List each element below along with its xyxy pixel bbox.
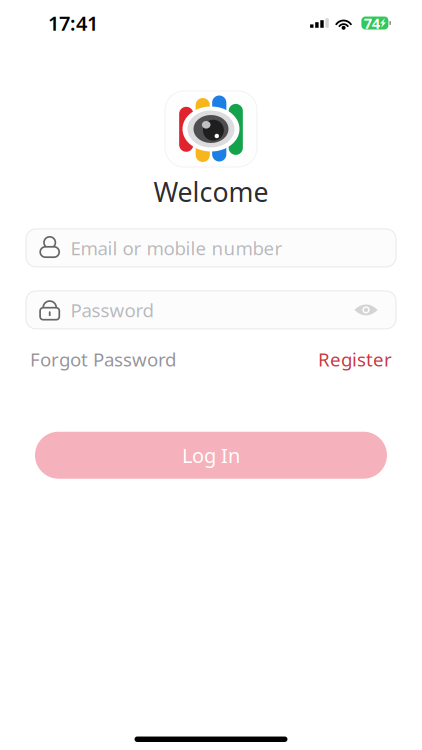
- button[interactable]: Show password: [354, 304, 378, 315]
- button[interactable]: Register: [318, 347, 392, 372]
- button[interactable]: Email or mobile number: [26, 229, 396, 267]
- staticText: Password: [70, 297, 153, 322]
- button[interactable]: Password: [26, 291, 396, 329]
- staticText: Log In: [182, 442, 240, 468]
- button[interactable]: Forgot Password: [30, 347, 176, 372]
- staticText: Welcome: [153, 174, 268, 209]
- button[interactable]: Log In: [35, 432, 387, 479]
- staticText: 74: [364, 13, 380, 33]
- staticText: Register: [318, 347, 392, 372]
- staticText: Forgot Password: [30, 347, 176, 372]
- staticText: 17:41: [48, 10, 98, 36]
- staticText: Email or mobile number: [70, 235, 282, 260]
